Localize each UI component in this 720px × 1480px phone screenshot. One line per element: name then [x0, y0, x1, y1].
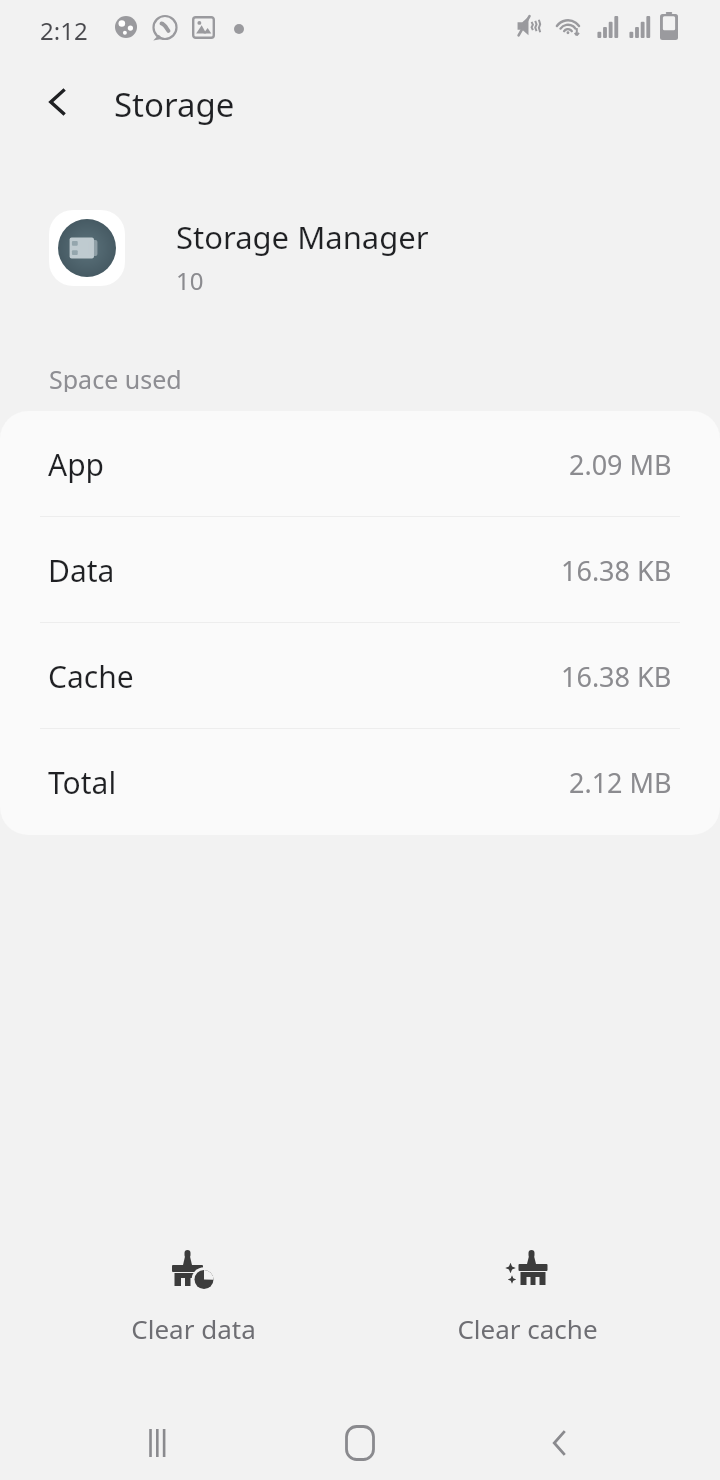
staticText: Clear data	[131, 1311, 256, 1341]
button[interactable]: App	[0, 411, 720, 517]
staticText: 10	[176, 264, 204, 297]
staticText: 16.38 KB	[561, 552, 672, 589]
button[interactable]: Recents	[118, 1403, 198, 1480]
staticText: Clear cache	[457, 1311, 598, 1341]
staticText: App	[48, 444, 105, 485]
staticText: Space used	[49, 362, 182, 392]
staticText: Data	[48, 550, 115, 591]
staticText: 2.09 MB	[569, 446, 672, 483]
staticText: Total	[48, 762, 117, 803]
staticText: 16.38 KB	[561, 658, 672, 695]
staticText: Cache	[48, 656, 134, 697]
staticText: 2:12	[40, 14, 88, 47]
button[interactable]: Clear data	[53, 1239, 333, 1349]
button[interactable]: Data	[0, 517, 720, 623]
button[interactable]: Back	[26, 70, 90, 134]
button[interactable]: Home	[320, 1403, 400, 1480]
staticText: Storage Manager	[176, 216, 429, 258]
staticText: 2.12 MB	[569, 764, 672, 801]
button[interactable]: Total	[0, 729, 720, 835]
button[interactable]: Clear cache	[387, 1239, 667, 1349]
button[interactable]: Cache	[0, 623, 720, 729]
staticText: Storage	[114, 82, 235, 127]
button[interactable]: Back	[520, 1403, 600, 1480]
